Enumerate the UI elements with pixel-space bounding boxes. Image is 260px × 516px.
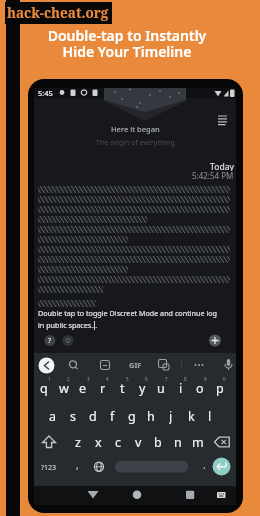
button[interactable]: t xyxy=(113,380,131,396)
staticText: h xyxy=(147,408,155,424)
button[interactable]: n xyxy=(169,434,187,450)
staticText: z xyxy=(75,434,81,450)
staticText: t xyxy=(120,380,125,396)
button[interactable]: i xyxy=(172,380,190,396)
staticText: c xyxy=(115,434,122,450)
button[interactable]: p xyxy=(211,380,229,396)
staticText: k xyxy=(188,408,195,424)
button[interactable]: o xyxy=(191,380,209,396)
staticText: x xyxy=(95,434,102,450)
button[interactable] xyxy=(38,357,55,374)
button[interactable]: , xyxy=(68,457,86,473)
staticText: u xyxy=(157,380,165,396)
staticText: GIF xyxy=(129,360,142,370)
button[interactable]: GIF xyxy=(127,359,143,371)
staticText: Double tap to toggle Discreet Mode and c… xyxy=(38,308,218,318)
button[interactable]: w xyxy=(55,380,73,396)
staticText: 7 xyxy=(165,376,168,382)
staticText: 3 xyxy=(87,376,90,382)
staticText: Double-tap to Instantly xyxy=(0,26,257,45)
staticText: d xyxy=(89,408,97,424)
button[interactable]: v xyxy=(129,434,147,450)
button[interactable] xyxy=(208,334,222,347)
button[interactable]: l xyxy=(201,408,219,424)
staticText: w xyxy=(59,380,69,396)
button[interactable] xyxy=(61,334,75,347)
button[interactable]: q xyxy=(35,380,53,396)
staticText: 1 xyxy=(48,376,51,382)
staticText: hack-cheat.org xyxy=(7,4,109,22)
button[interactable]: u xyxy=(152,380,170,396)
staticText: v xyxy=(135,434,142,450)
button[interactable] xyxy=(128,488,146,502)
button[interactable]: j xyxy=(162,408,180,424)
button[interactable] xyxy=(84,488,102,502)
staticText: y xyxy=(139,380,146,396)
button[interactable]: b xyxy=(149,434,167,450)
staticText: 6 xyxy=(145,376,148,382)
staticText: f xyxy=(110,408,115,424)
staticText: q xyxy=(40,380,48,396)
button[interactable]: r xyxy=(94,380,112,396)
staticText: b xyxy=(154,434,162,450)
staticText: , xyxy=(76,458,79,472)
button[interactable]: a xyxy=(44,408,62,424)
staticText: Here it began xyxy=(111,124,160,134)
staticText: Today xyxy=(210,161,234,171)
button[interactable]: s xyxy=(64,408,82,424)
button[interactable]: g xyxy=(123,408,141,424)
button[interactable] xyxy=(212,457,231,476)
staticText: Hide Your Timeline xyxy=(0,42,257,61)
button[interactable]: d xyxy=(84,408,102,424)
staticText: e xyxy=(79,380,87,396)
staticText: ?123 xyxy=(41,463,57,473)
staticText: 4 xyxy=(106,376,109,382)
staticText: p xyxy=(216,380,224,396)
staticText: 9 xyxy=(204,376,207,382)
staticText: 0 xyxy=(223,376,226,382)
button[interactable]: ?123 xyxy=(41,462,57,473)
staticText: r xyxy=(100,380,106,396)
staticText: m xyxy=(192,434,204,450)
staticText: j xyxy=(169,408,173,424)
staticText: a xyxy=(49,408,57,424)
button[interactable]: e xyxy=(74,380,92,396)
button[interactable]: f xyxy=(103,408,121,424)
staticText: s xyxy=(70,408,76,424)
staticText: l xyxy=(208,408,212,424)
staticText: i xyxy=(179,380,183,396)
button[interactable]: h xyxy=(142,408,160,424)
staticText: The origin of everything xyxy=(96,138,175,148)
button[interactable]: x xyxy=(89,434,107,450)
button[interactable] xyxy=(181,488,199,502)
button[interactable] xyxy=(115,461,188,473)
staticText: n xyxy=(174,434,182,450)
button[interactable]: y xyxy=(133,380,151,396)
button[interactable]: m xyxy=(189,434,207,450)
staticText: 2 xyxy=(67,376,70,382)
button[interactable]: c xyxy=(109,434,127,450)
staticText: ? xyxy=(48,336,52,346)
button[interactable]: ? xyxy=(43,334,57,348)
staticText: o xyxy=(196,380,204,396)
staticText: 5 xyxy=(126,376,129,382)
staticText: 5:45 xyxy=(38,88,53,98)
staticText: 8 xyxy=(184,376,187,382)
staticText: g xyxy=(128,408,136,424)
button[interactable] xyxy=(215,113,231,128)
button[interactable]: k xyxy=(182,408,200,424)
staticText: 5:42:54 PM xyxy=(192,170,234,180)
button[interactable]: . xyxy=(195,457,213,473)
staticText: . xyxy=(203,458,206,472)
staticText: in public spaces... xyxy=(38,320,98,330)
button[interactable]: z xyxy=(69,434,87,450)
